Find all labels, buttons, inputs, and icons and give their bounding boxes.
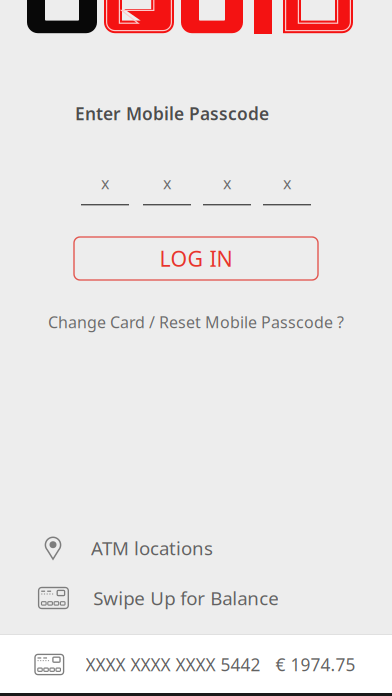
button[interactable]: Passcode digit: [143, 175, 191, 207]
button[interactable]: Swipe Up for Balance: [39, 576, 379, 620]
button[interactable]: Change Card / Reset Mobile Passcode ?: [31, 310, 361, 334]
button[interactable]: LOG IN: [74, 237, 318, 280]
button[interactable]: Passcode digit: [203, 175, 251, 207]
button[interactable]: XXXX XXXX XXXX 5442 € 1974.75: [0, 634, 392, 695]
staticText: x: [283, 172, 291, 194]
staticText: Change Card / Reset Mobile Passcode ?: [48, 311, 344, 333]
button[interactable]: Passcode digit: [263, 175, 311, 207]
staticText: Swipe Up for Balance: [93, 586, 279, 610]
button[interactable]: Passcode digit: [81, 175, 129, 207]
staticText: ATM locations: [91, 536, 213, 560]
button[interactable]: ATM locations: [43, 526, 383, 570]
staticText: LOG IN: [159, 244, 232, 273]
staticText: x: [223, 172, 231, 194]
staticText: x: [101, 172, 109, 194]
staticText: x: [163, 172, 171, 194]
staticText: XXXX XXXX XXXX 5442 € 1974.75: [86, 653, 356, 676]
staticText: Enter Mobile Passcode: [75, 102, 269, 125]
